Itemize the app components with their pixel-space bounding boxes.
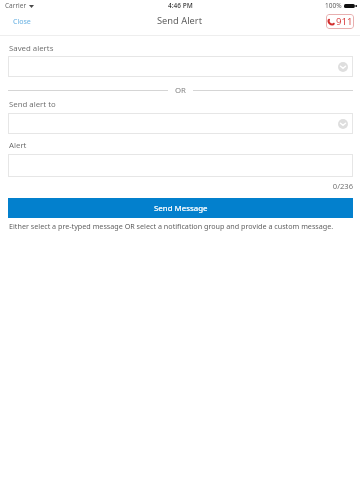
staticText: 911 xyxy=(336,15,353,28)
staticText: OR xyxy=(175,85,186,96)
staticText: Send Alert xyxy=(157,14,203,27)
button[interactable]: Close xyxy=(5,13,39,31)
staticText: Close xyxy=(13,17,31,27)
staticText: Alert xyxy=(9,140,27,151)
staticText: Send alert to xyxy=(9,99,56,110)
staticText: Saved alerts xyxy=(9,43,54,54)
button[interactable] xyxy=(8,154,353,177)
staticText: Carrier xyxy=(5,1,27,10)
button[interactable]: Send Message xyxy=(8,198,353,218)
staticText: Either select a pre-typed message OR sel… xyxy=(9,221,349,231)
staticText: 0/236 xyxy=(8,181,353,191)
other: Open dropdown xyxy=(338,62,348,72)
other: Open dropdown xyxy=(338,119,348,129)
staticText: 4:46 PM xyxy=(168,1,193,10)
staticText: 100% xyxy=(325,1,342,10)
button[interactable]: Open dropdown xyxy=(8,56,353,77)
button[interactable]: Open dropdown xyxy=(8,113,353,134)
button[interactable]: Call 911 xyxy=(326,14,354,29)
staticText: Send Message xyxy=(154,203,208,214)
